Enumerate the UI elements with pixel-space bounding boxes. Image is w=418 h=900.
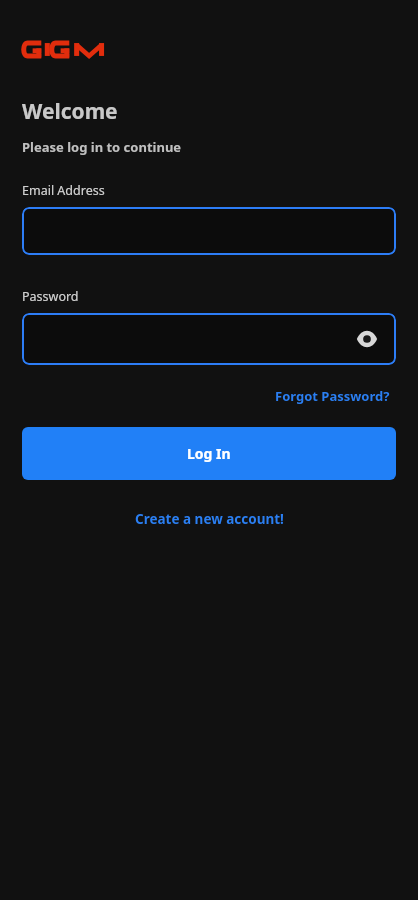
staticText: Log In — [187, 444, 231, 463]
button[interactable]: Password input — [22, 313, 396, 365]
button[interactable]: Email Address input — [22, 207, 396, 255]
button[interactable]: Log In — [22, 427, 396, 480]
button[interactable]: Forgot Password? — [269, 383, 396, 409]
staticText: Password — [22, 288, 79, 305]
button[interactable]: Show password — [352, 324, 382, 354]
staticText: Create a new account! — [135, 510, 284, 528]
button[interactable]: Create a new account! — [127, 506, 292, 532]
staticText: Welcome — [22, 97, 118, 126]
staticText: Please log in to continue — [22, 138, 182, 156]
staticText: Email Address — [22, 182, 105, 199]
staticText: Forgot Password? — [275, 387, 390, 405]
